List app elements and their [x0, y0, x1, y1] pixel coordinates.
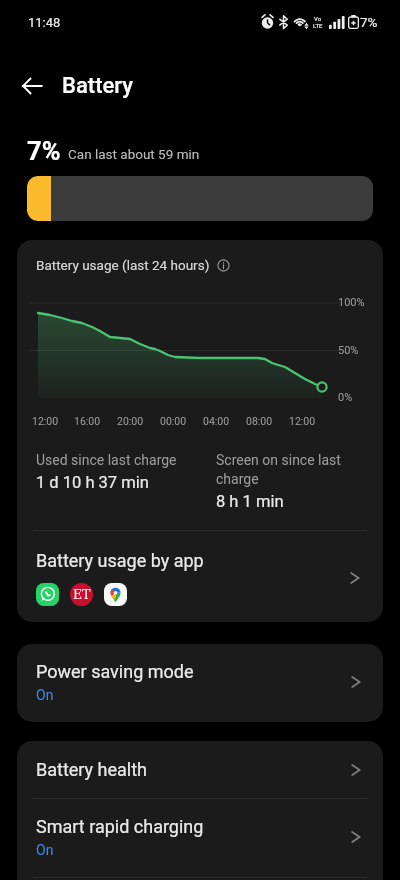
staticText: 00:00	[160, 415, 187, 427]
staticText: Vo	[314, 15, 322, 22]
staticText: Battery health	[36, 759, 350, 780]
staticText: 7%	[27, 136, 61, 166]
staticText: 12:00	[32, 415, 59, 427]
staticText: Smart rapid charging	[36, 816, 204, 837]
staticText: 0%	[338, 391, 353, 404]
staticText: Used since last charge	[36, 452, 177, 468]
staticText: 11:48	[28, 15, 61, 30]
staticText: 20:00	[117, 415, 144, 427]
staticText: 50%	[338, 344, 359, 357]
button[interactable]: Battery usage by app	[17, 531, 383, 622]
staticText: 04:00	[203, 415, 230, 427]
staticText: 8 h 1 min	[216, 492, 284, 511]
staticText: Power saving mode	[36, 661, 194, 682]
button[interactable]: Back	[10, 64, 54, 108]
button[interactable]: Smart rapid charging	[17, 799, 383, 877]
staticText: 1 d 10 h 37 min	[36, 473, 149, 492]
staticText: 7%	[360, 14, 378, 30]
staticText: Battery usage by app	[36, 550, 204, 571]
staticText: 100%	[338, 296, 365, 309]
staticText: ET	[73, 587, 91, 602]
staticText: Battery	[62, 73, 133, 99]
button[interactable]: Battery health	[17, 741, 383, 798]
staticText: Can last about 59 min	[68, 146, 200, 162]
staticText: 16:00	[74, 415, 101, 427]
staticText: On	[36, 842, 54, 858]
staticText: Battery usage (last 24 hours)	[36, 257, 210, 273]
staticText: 12:00	[289, 415, 316, 427]
button[interactable]: Power saving mode	[17, 644, 383, 722]
staticText: LTE	[313, 22, 323, 29]
staticText: Screen on since last charge	[216, 452, 369, 487]
staticText: 08:00	[246, 415, 273, 427]
staticText: On	[36, 687, 54, 703]
